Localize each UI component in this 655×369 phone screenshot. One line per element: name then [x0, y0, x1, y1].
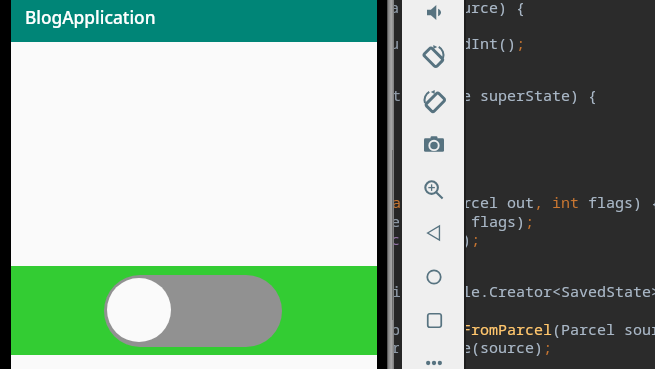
- button[interactable]: Zoom: [422, 178, 446, 202]
- staticText: c: [394, 229, 399, 249]
- staticText: BlogApplication: [25, 6, 156, 30]
- button[interactable]: Screenshot: [422, 133, 446, 157]
- button[interactable]: Home: [422, 265, 446, 289]
- staticText: r: [394, 337, 399, 357]
- button[interactable]: Toggle: [104, 275, 282, 347]
- button[interactable]: Volume: [422, 0, 446, 24]
- button[interactable]: More: [422, 351, 446, 369]
- staticText: e(source);: [462, 337, 553, 357]
- staticText: );: [462, 229, 481, 249]
- button[interactable]: Overview: [422, 308, 446, 332]
- staticText: e superState) {: [462, 85, 598, 105]
- staticText: i: [394, 281, 400, 301]
- button[interactable]: Back: [422, 221, 446, 245]
- button[interactable]: Rotate right: [422, 89, 446, 113]
- staticText: FromParcel(Parcel sour: [462, 319, 655, 339]
- staticText: a: [394, 192, 400, 212]
- staticText: e: [394, 211, 399, 231]
- staticText: al: [394, 0, 398, 17]
- staticText: rcel out, int flags) {: [462, 192, 655, 212]
- staticText: dInt();: [462, 33, 526, 53]
- staticText: le.Creator<SavedState>: [462, 281, 655, 301]
- staticText: b: [394, 319, 399, 339]
- staticText: t: [394, 85, 400, 105]
- staticText: flags);: [462, 211, 535, 231]
- button[interactable]: Rotate left: [422, 44, 446, 68]
- staticText: urce) {: [462, 0, 526, 17]
- staticText: ul: [394, 33, 398, 53]
